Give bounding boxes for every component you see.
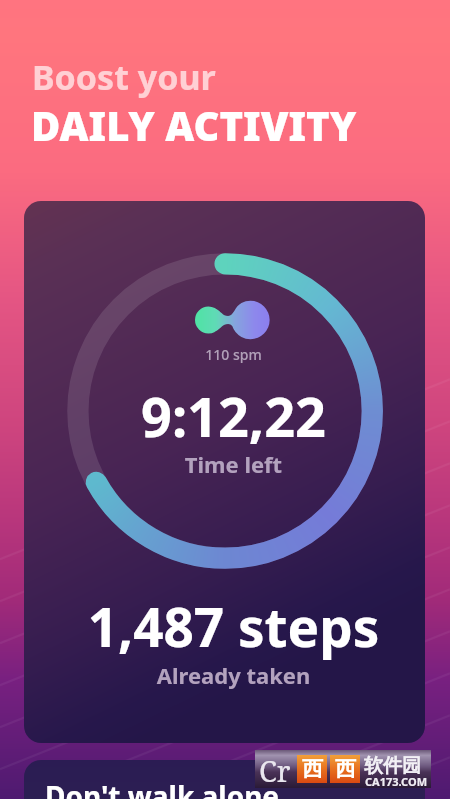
staticText: 110 spm bbox=[33, 345, 425, 364]
staticText: Cr bbox=[259, 751, 291, 789]
staticText: DAILY ACTIVITY bbox=[31, 98, 357, 152]
staticText: 9:12,22 bbox=[33, 379, 425, 453]
staticText: CA173.COM bbox=[365, 774, 428, 789]
button[interactable]: 110 spm bbox=[24, 201, 425, 743]
staticText: 1,487 steps bbox=[33, 590, 425, 662]
staticText: Already taken bbox=[33, 660, 425, 690]
staticText: Time left bbox=[33, 449, 425, 479]
staticText: 软件园 bbox=[364, 754, 421, 778]
staticText: Boost your bbox=[32, 54, 216, 100]
staticText: 西 bbox=[335, 756, 356, 782]
staticText: Don't walk alone bbox=[45, 777, 280, 799]
button[interactable]: Don't walk alone bbox=[24, 760, 425, 799]
staticText: 西 bbox=[302, 756, 323, 782]
